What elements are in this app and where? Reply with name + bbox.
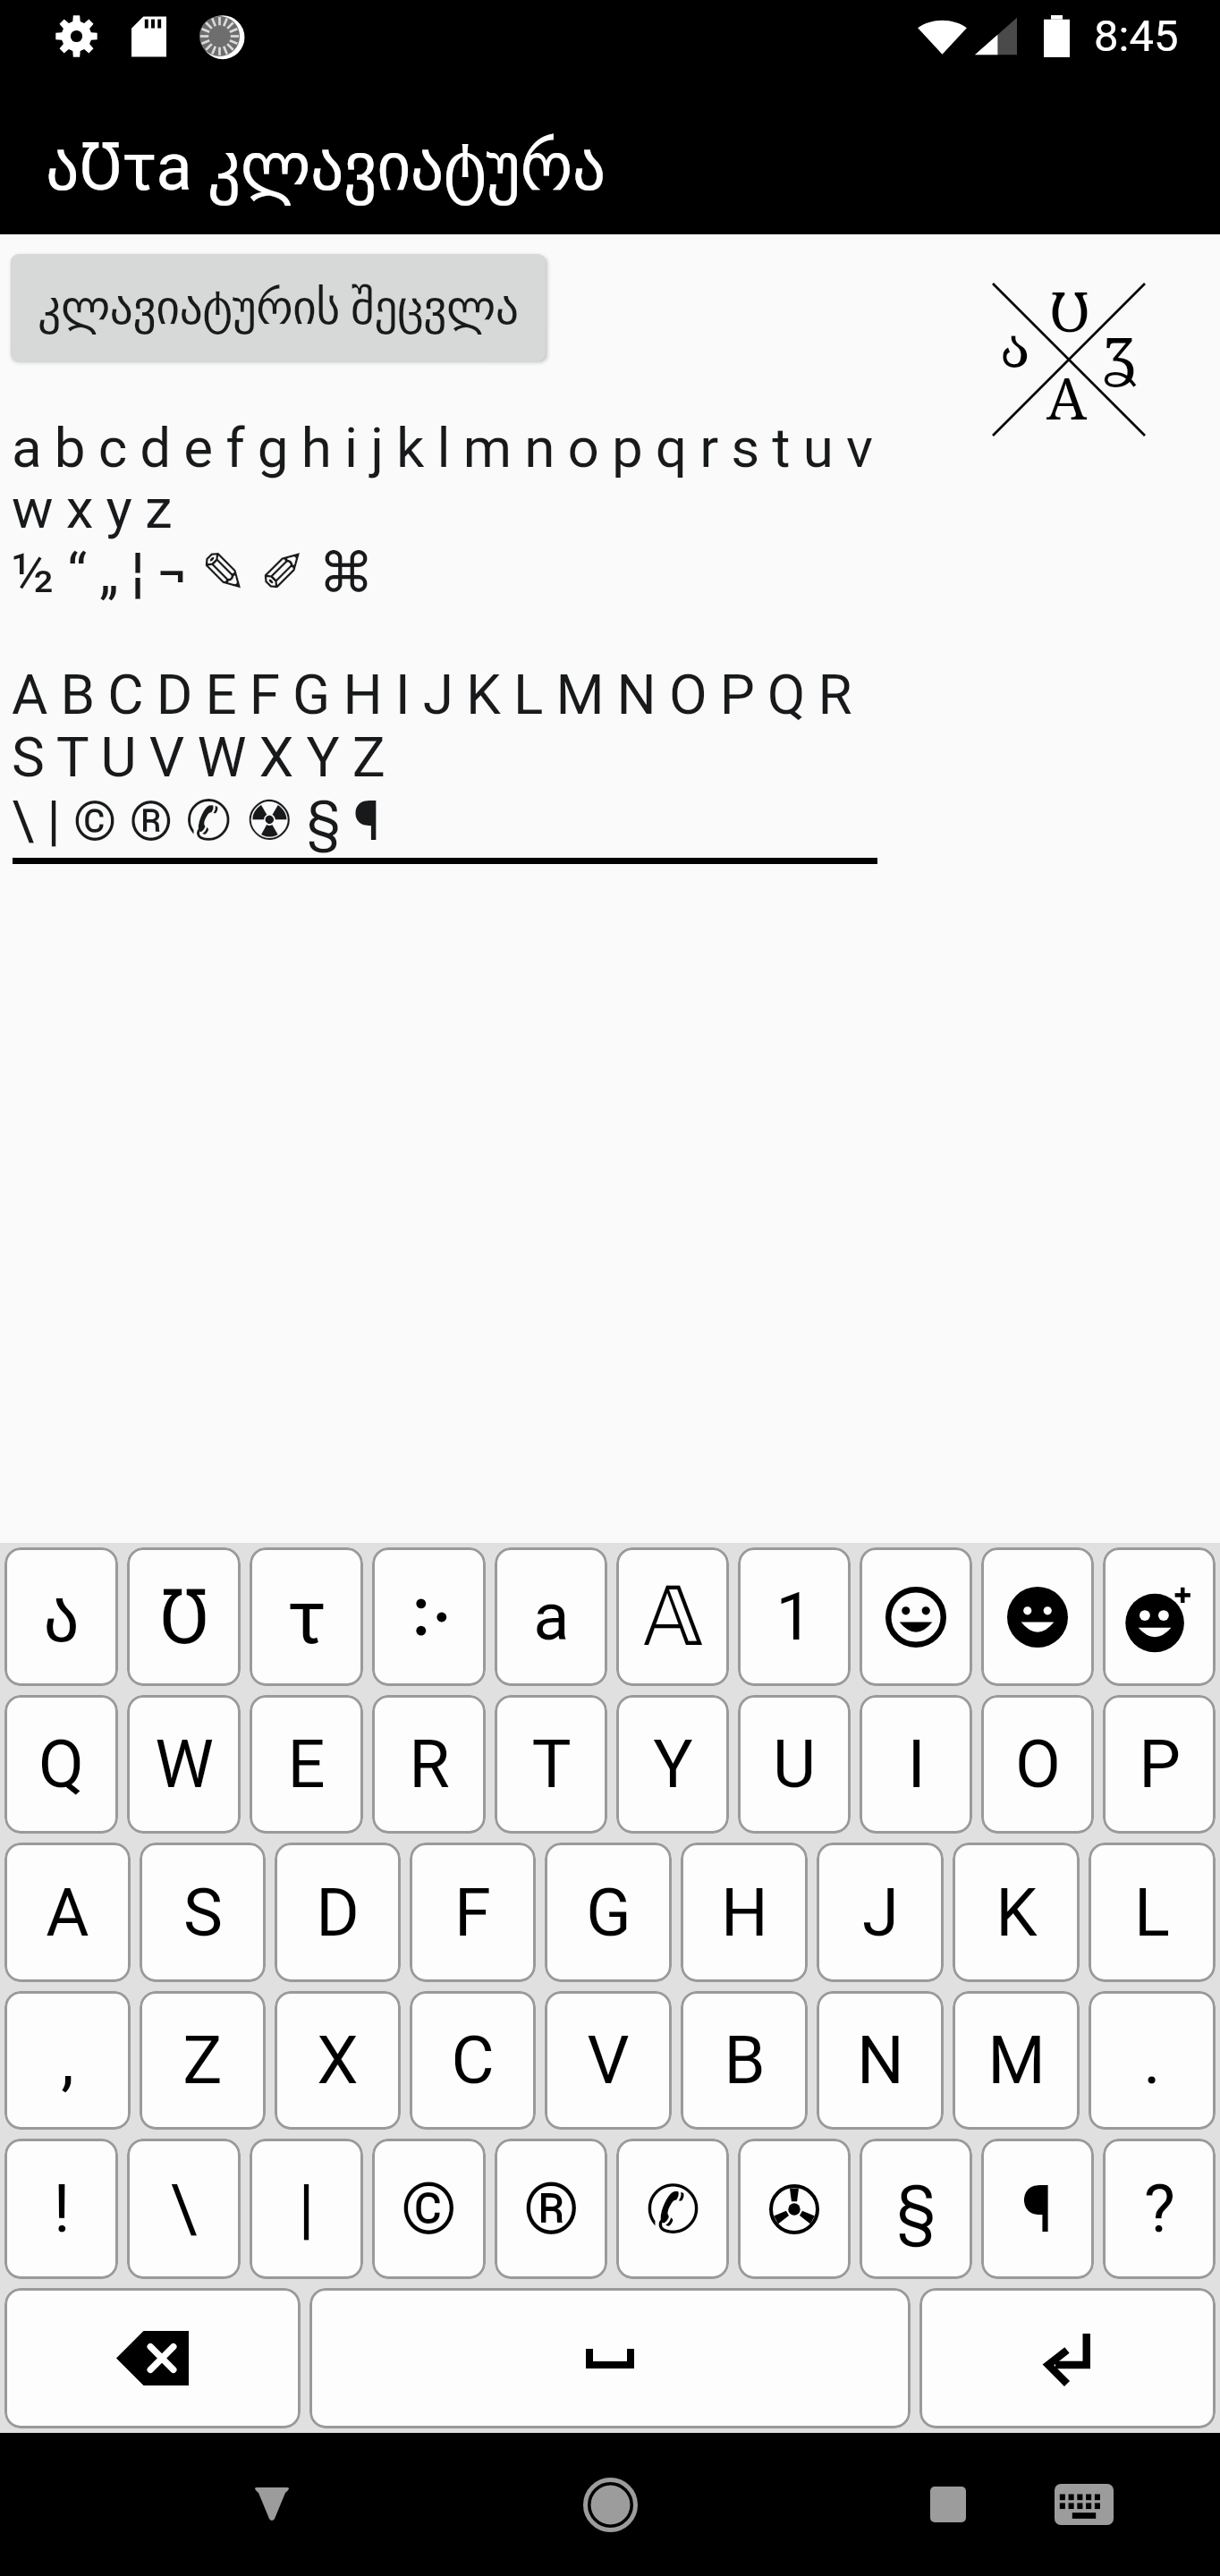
button[interactable]: K [953, 1843, 1080, 1982]
button[interactable]: ? [1103, 2139, 1216, 2279]
button[interactable]: A [4, 1843, 131, 1982]
staticText: Ʊ [158, 1572, 210, 1662]
button[interactable]: | [250, 2139, 363, 2279]
button[interactable]: Smiley [860, 1547, 972, 1686]
button[interactable]: Ʊ [127, 1547, 241, 1686]
staticText: აƱτa კლავიატურა [46, 128, 606, 206]
staticText: X [317, 2021, 359, 2099]
button[interactable]: ¶ [981, 2139, 1094, 2279]
staticText: A [1046, 359, 1088, 436]
staticText: U [773, 1725, 816, 1803]
button[interactable]: Switch keyboard [1026, 2446, 1142, 2563]
button[interactable]: \ [127, 2139, 241, 2279]
button[interactable]: ! [4, 2139, 118, 2279]
staticText: Q [38, 1725, 84, 1803]
staticText: § [896, 2172, 936, 2247]
staticText: , [61, 2021, 74, 2099]
staticText: N [857, 2021, 904, 2099]
button[interactable]: U [738, 1695, 851, 1834]
button[interactable]: Enter [919, 2288, 1216, 2428]
button[interactable]: Q [4, 1695, 118, 1834]
staticText: a b c d e f g h i j k l m n o p q r s t … [12, 415, 873, 480]
staticText: © [401, 2167, 457, 2251]
button[interactable]: Radioactive [738, 2139, 851, 2279]
button[interactable]: R [372, 1695, 486, 1834]
staticText: A B C D E F G H I J K L M N O P Q R [12, 662, 852, 727]
staticText: O [1015, 1725, 1061, 1803]
staticText: . [1143, 2021, 1161, 2099]
staticText: 1 [775, 1578, 813, 1656]
button[interactable]: S [140, 1843, 266, 1982]
staticText: \ | © ® ✆ ☢ § ¶ [12, 788, 380, 853]
staticText: 𝔸 [643, 1570, 703, 1664]
staticText: T [531, 1725, 572, 1803]
button[interactable]: Recent apps [890, 2446, 1006, 2563]
button[interactable]: V [545, 1991, 672, 2130]
button[interactable]: M [953, 1991, 1080, 2130]
button[interactable]: ა [4, 1547, 118, 1686]
button[interactable]: I [860, 1695, 972, 1834]
button[interactable]: N [817, 1991, 944, 2130]
button[interactable]: Emoji [981, 1547, 1094, 1686]
button[interactable]: Y [616, 1695, 729, 1834]
staticText: ¶ [1021, 2172, 1054, 2247]
other: Emoji [1007, 1587, 1068, 1648]
staticText: Ʊ [1049, 273, 1091, 348]
button[interactable]: J [817, 1843, 944, 1982]
button[interactable]: ✆ [616, 2139, 729, 2279]
button[interactable]: E [250, 1695, 363, 1834]
staticText: K [995, 1874, 1038, 1952]
button[interactable]: G [545, 1843, 672, 1982]
other: Add emoji [1123, 1580, 1196, 1654]
button[interactable]: Backspace [4, 2288, 301, 2428]
staticText: V [587, 2021, 630, 2099]
staticText: w x y z [12, 476, 173, 541]
staticText: H [721, 1874, 768, 1952]
button[interactable]: P [1103, 1695, 1216, 1834]
button[interactable]: კლავიატურის შეცვლა [11, 254, 546, 361]
button[interactable]: Punctuation [372, 1547, 486, 1686]
button[interactable]: B [681, 1991, 808, 2130]
staticText: a [533, 1578, 570, 1656]
staticText: | [298, 2170, 315, 2248]
button[interactable]: Add emoji [1103, 1547, 1216, 1686]
button[interactable]: O [981, 1695, 1094, 1834]
staticText: კლავიატურის შეცვლა [38, 281, 519, 335]
button[interactable]: D [275, 1843, 401, 1982]
button[interactable]: H [681, 1843, 808, 1982]
other: Punctuation [409, 1597, 450, 1638]
button[interactable]: , [4, 1991, 131, 2130]
button[interactable]: Z [140, 1991, 266, 2130]
button[interactable]: X [275, 1991, 401, 2130]
button[interactable]: § [860, 2139, 972, 2279]
button[interactable]: a [495, 1547, 607, 1686]
other: Smiley [885, 1587, 946, 1648]
button[interactable]: Back [214, 2446, 330, 2563]
button[interactable]: F [410, 1843, 536, 1982]
button[interactable]: W [127, 1695, 241, 1834]
staticText: τ [287, 1573, 326, 1661]
button[interactable]: Space [309, 2288, 911, 2428]
staticText: J [862, 1874, 899, 1952]
staticText: R [409, 1725, 450, 1803]
staticText: P [1139, 1725, 1181, 1803]
staticText: I [907, 1725, 926, 1803]
staticText: L [1134, 1874, 1170, 1952]
button[interactable]: . [1089, 1991, 1216, 2130]
button[interactable]: τ [250, 1547, 363, 1686]
other: Enter [1046, 2334, 1090, 2384]
other: Backspace [116, 2331, 189, 2385]
staticText: \ [170, 2170, 198, 2248]
staticText: 8:45 [1094, 11, 1179, 62]
staticText: ʓ [1102, 303, 1138, 391]
button[interactable]: © [372, 2139, 486, 2279]
button[interactable]: ® [495, 2139, 607, 2279]
button[interactable]: 𝔸 [616, 1547, 729, 1686]
button[interactable]: T [495, 1695, 607, 1834]
button[interactable]: L [1089, 1843, 1216, 1982]
staticText: G [586, 1874, 631, 1952]
button[interactable]: Home [552, 2446, 668, 2563]
button[interactable]: C [410, 1991, 536, 2130]
other: Radioactive [769, 2184, 819, 2234]
button[interactable]: 1 [738, 1547, 851, 1686]
